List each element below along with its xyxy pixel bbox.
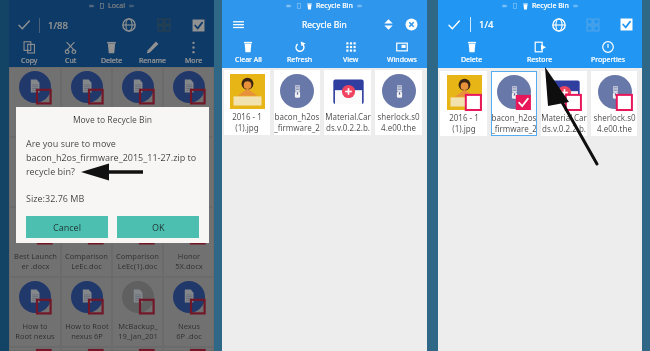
button[interactable] <box>113 348 162 350</box>
staticText: Move to Recycle Bin <box>26 114 199 126</box>
button[interactable]: Select all <box>620 18 633 31</box>
button[interactable]: Material.Car ds.v.0.2.2.b. <box>541 71 587 136</box>
button[interactable] <box>62 138 111 206</box>
button[interactable]: Close <box>405 18 418 31</box>
staticText: Properties <box>591 55 625 65</box>
staticText: Windows <box>387 55 417 65</box>
button[interactable]: Sort <box>383 19 394 30</box>
button[interactable]: Delete <box>91 39 132 67</box>
button[interactable]: sherlock.s0 4.e00.the <box>591 71 637 136</box>
staticText: McBackup_ 19_Jan_201 <box>118 321 158 341</box>
button[interactable]: How to Root nexus 6P <box>62 278 111 346</box>
button[interactable]: Cancel <box>26 216 108 238</box>
button[interactable] <box>113 138 162 206</box>
button[interactable]: Menu <box>232 18 245 31</box>
staticText: Copy <box>21 56 38 66</box>
button[interactable]: Best Launch er .docx <box>10 208 60 276</box>
button[interactable]: Copy <box>9 39 50 67</box>
staticText: Delete <box>101 56 123 66</box>
staticText: bacon_h2os _firmware_2 <box>274 111 320 133</box>
button[interactable]: 2016 - 1 (1).jpg <box>224 70 270 135</box>
button[interactable] <box>164 348 213 350</box>
staticText: 1/4 <box>479 18 494 31</box>
button[interactable] <box>62 68 111 136</box>
button[interactable]: Select all <box>192 19 205 32</box>
button[interactable] <box>10 348 60 350</box>
staticText: Comparison LeEc.doc <box>65 251 108 271</box>
button[interactable]: View <box>325 38 376 68</box>
staticText: Local <box>108 1 125 11</box>
button[interactable]: Confirm <box>447 18 461 32</box>
button[interactable] <box>113 68 162 136</box>
button[interactable]: Browser <box>122 18 136 32</box>
staticText: Comparison LeEc(1).doc <box>116 251 159 271</box>
button[interactable] <box>62 348 111 350</box>
button[interactable]: Comparison LeEc(1).doc <box>113 208 162 276</box>
button[interactable]: Refresh <box>274 38 325 68</box>
button[interactable] <box>10 138 60 206</box>
button[interactable]: Restore <box>506 38 574 68</box>
button[interactable]: bacon_h2os _firmware_2 <box>491 71 537 136</box>
staticText: 2016 - 1 (1).jpg <box>232 111 262 133</box>
staticText: View <box>343 55 359 65</box>
staticText: Rename <box>139 56 167 66</box>
button[interactable]: Nexus 6P .doc <box>164 278 213 346</box>
button[interactable]: OK <box>117 216 199 238</box>
staticText: Restore <box>527 55 553 65</box>
staticText: sherlock.s0 4.e00.the <box>377 111 420 133</box>
button[interactable]: sherlock.s0 4.e00.the <box>375 70 422 135</box>
staticText: Best Launch er .docx <box>14 251 57 271</box>
button[interactable]: How to Root nexus <box>10 278 60 346</box>
button[interactable]: Share <box>586 18 600 32</box>
button[interactable] <box>164 138 213 206</box>
staticText: Recycle Bin <box>316 1 353 11</box>
staticText: Refresh <box>287 55 313 65</box>
staticText: Nexus 6P .doc <box>176 321 202 341</box>
staticText: Delete <box>461 55 483 65</box>
staticText: Recycle Bin <box>302 19 347 31</box>
staticText: Clear All <box>235 55 262 65</box>
button[interactable]: Properties <box>574 38 642 68</box>
staticText: 2016 - 1 (1).jpg <box>449 112 479 134</box>
button[interactable]: Windows <box>376 38 427 68</box>
staticText: Material.Car ds.v.0.2.2.b. <box>541 112 587 134</box>
button[interactable]: Browser <box>552 18 566 32</box>
button[interactable]: 2016 - 1 (1).jpg <box>440 71 487 136</box>
button[interactable] <box>10 68 60 136</box>
button[interactable]: McBackup_ 19_Jan_201 <box>113 278 162 346</box>
staticText: Recycle Bin <box>532 1 569 11</box>
button[interactable]: Rename <box>132 39 173 67</box>
button[interactable]: bacon_h2os _firmware_2 <box>274 70 320 135</box>
button[interactable]: Delete <box>438 38 506 68</box>
staticText: How to Root nexus 6P <box>65 321 109 341</box>
staticText: Are you sure to move bacon_h2os_firmware… <box>26 137 197 178</box>
button[interactable]: Honor 5X.docx <box>164 208 213 276</box>
staticText: 1/88 <box>48 19 68 32</box>
staticText: sherlock.s0 4.e00.the <box>593 112 636 134</box>
staticText: How to Root nexus <box>15 321 55 341</box>
staticText: Cancel <box>53 221 82 233</box>
staticText: Material.Car ds.v.0.2.2.b. <box>325 111 371 133</box>
button[interactable]: Confirm <box>17 18 31 32</box>
button[interactable]: Comparison LeEc.doc <box>62 208 111 276</box>
staticText: Size:32.76 MB <box>26 192 85 204</box>
staticText: bacon_h2os _firmware_2 <box>491 112 537 134</box>
button[interactable]: Clear All <box>222 38 274 68</box>
button[interactable]: Cut <box>50 39 91 67</box>
button[interactable]: Material.Car ds.v.0.2.2.b. <box>324 70 371 135</box>
button[interactable]: More <box>173 39 214 67</box>
staticText: More <box>185 56 203 66</box>
button[interactable]: Share <box>157 18 171 32</box>
staticText: OK <box>152 221 165 233</box>
staticText: Cut <box>65 56 77 66</box>
button[interactable] <box>164 68 213 136</box>
staticText: Honor 5X.docx <box>175 251 203 271</box>
